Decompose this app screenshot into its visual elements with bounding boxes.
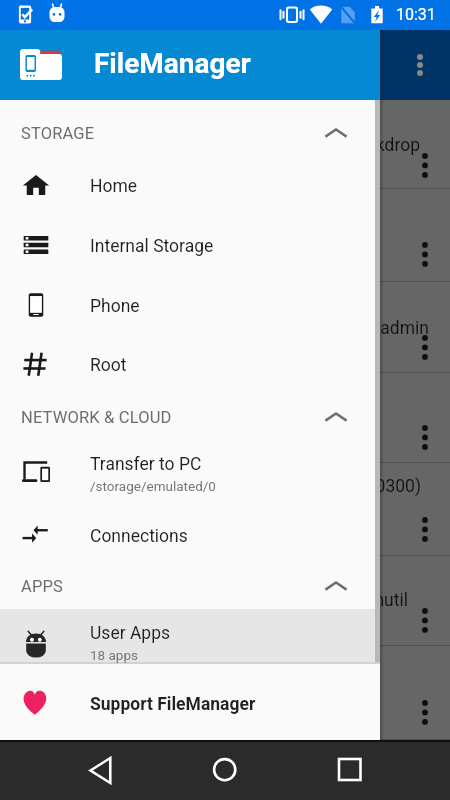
staticText: com.android.admin (0, 318, 429, 339)
staticText: com.busybox.nutil (0, 590, 408, 611)
other: Collapse NETWORK & CLOUD (324, 405, 348, 429)
button[interactable]: User Apps (0, 610, 380, 663)
other: Collapse STORAGE (324, 121, 348, 145)
staticText: Telegram (20200300) (0, 476, 421, 497)
button[interactable]: Home (203, 748, 247, 792)
button[interactable] (0, 372, 450, 463)
staticText: Home (90, 176, 138, 197)
button[interactable] (0, 647, 450, 740)
staticText: /storage/emulated/0 (90, 478, 216, 494)
button[interactable]: NETWORK & CLOUD (0, 394, 380, 440)
button[interactable]: Support FileManager (0, 675, 380, 731)
button[interactable]: com.android.admin (0, 282, 450, 373)
staticText: 18 apps (90, 647, 138, 663)
button[interactable]: Transfer to PC (0, 441, 380, 494)
button[interactable]: More options (403, 48, 437, 82)
button[interactable]: Connections (0, 507, 380, 563)
staticText: Internal Storage (90, 236, 214, 257)
staticText: Screenshot backdrop (0, 135, 420, 156)
staticText: NETWORK & CLOUD (21, 408, 172, 427)
button[interactable]: Phone (0, 277, 380, 333)
staticText: Support FileManager (90, 694, 256, 715)
staticText: STORAGE (21, 124, 95, 143)
button[interactable] (0, 189, 450, 282)
staticText: Connections (90, 526, 188, 547)
button[interactable]: Back (74, 748, 118, 792)
button[interactable]: com.busybox.nutil (0, 555, 450, 646)
staticText: User Apps (90, 623, 171, 644)
button[interactable]: Root (0, 336, 380, 392)
button[interactable]: APPS (0, 563, 380, 609)
other: Collapse APPS (324, 574, 348, 598)
staticText: APPS (21, 577, 63, 596)
staticText: FileManager (94, 47, 251, 80)
button[interactable]: Screenshot backdrop (0, 100, 450, 189)
button[interactable]: STORAGE (0, 110, 380, 156)
button[interactable]: Telegram (20200300) (0, 464, 450, 556)
staticText: Root (90, 355, 127, 376)
button[interactable]: Home (0, 157, 380, 213)
staticText: Transfer to PC (90, 454, 202, 475)
staticText: 10:31 (396, 5, 436, 24)
staticText: Phone (90, 296, 140, 317)
button[interactable]: Internal Storage (0, 217, 380, 273)
button[interactable]: Recent apps (328, 748, 372, 792)
